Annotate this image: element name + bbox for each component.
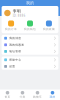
staticText: 我的订单 <box>5 27 17 31</box>
staticText: 地址管理 <box>9 50 21 53</box>
staticText: 分类 <box>19 95 25 98</box>
staticText: 李明 <box>13 9 21 13</box>
staticText: 我的钱包 <box>24 27 36 31</box>
staticText: ID: 8886 <box>13 14 26 17</box>
staticText: 购物车 <box>33 95 42 98</box>
button[interactable]: 设置 <box>2 63 58 70</box>
button[interactable]: 我的订单 <box>2 20 20 31</box>
button[interactable]: 首页 <box>0 91 15 98</box>
button[interactable]: 我的钱包 <box>20 20 39 31</box>
staticText: 我的消息 <box>9 37 21 40</box>
button[interactable]: 我的消息 <box>2 35 58 41</box>
button[interactable]: 我的优惠券 <box>2 41 58 48</box>
button[interactable]: 我的 <box>45 91 60 98</box>
staticText: 首页 <box>4 95 10 98</box>
staticText: 我的 <box>26 0 34 5</box>
staticText: 帮助中心 <box>9 58 21 61</box>
button[interactable]: 我的收藏 <box>39 20 58 31</box>
staticText: 我的 <box>49 95 55 98</box>
staticText: 设置 <box>9 65 15 68</box>
button[interactable]: 分类 <box>15 91 30 98</box>
staticText: 我的优惠券 <box>9 43 24 46</box>
button[interactable]: 帮助中心 <box>2 56 58 63</box>
staticText: 我的收藏 <box>43 27 55 31</box>
button[interactable]: 地址管理 <box>2 48 58 55</box>
button[interactable]: 购物车 <box>30 91 45 98</box>
